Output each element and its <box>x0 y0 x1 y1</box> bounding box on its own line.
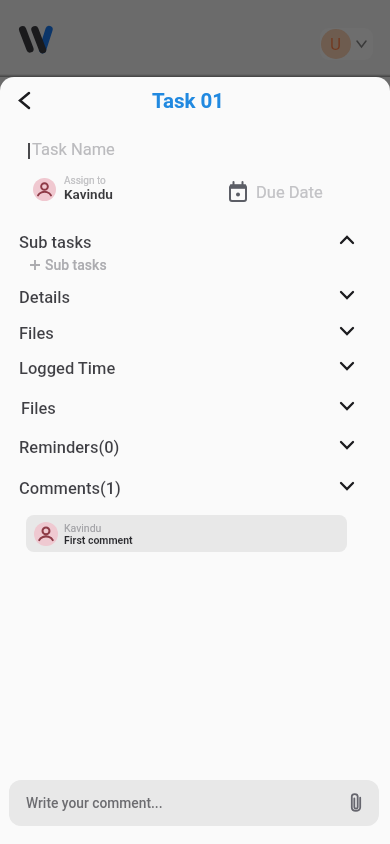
button[interactable]: Sub tasks <box>30 254 107 276</box>
staticText: Assign to <box>64 175 106 187</box>
button[interactable]: Comments(1) <box>0 470 390 506</box>
button[interactable]: Files <box>0 315 390 351</box>
button[interactable]: Kavindu <box>26 515 347 552</box>
button[interactable]: Details <box>0 279 390 315</box>
staticText: Due Date <box>256 183 323 202</box>
button[interactable]: Assign to <box>33 176 124 202</box>
staticText: Logged Time <box>19 359 116 378</box>
staticText: U <box>330 34 342 54</box>
staticText: Details <box>19 288 71 307</box>
staticText: Kavindu <box>64 186 113 202</box>
staticText: Reminders(0) <box>19 438 120 457</box>
button[interactable]: Files <box>0 390 390 426</box>
staticText: First comment <box>64 534 133 546</box>
staticText: Task 01 <box>152 89 225 113</box>
button[interactable]: Back <box>8 84 40 116</box>
staticText: Write your comment... <box>26 795 163 811</box>
staticText: Kavindu <box>64 522 102 534</box>
staticText: Sub tasks <box>19 233 92 252</box>
button[interactable]: Reminders(0) <box>0 429 390 465</box>
staticText: Task Name <box>32 140 115 159</box>
staticText: Comments(1) <box>19 479 121 498</box>
button[interactable]: Account <box>321 29 351 59</box>
button[interactable]: Attach file <box>345 791 367 813</box>
button[interactable]: Logged Time <box>0 350 390 386</box>
staticText: Files <box>21 399 56 418</box>
staticText: Sub tasks <box>45 257 107 273</box>
button[interactable]: Due Date <box>229 179 323 205</box>
staticText: Files <box>19 324 54 343</box>
button[interactable]: Write your comment... <box>9 780 379 826</box>
button[interactable]: Sub tasks <box>0 224 390 260</box>
